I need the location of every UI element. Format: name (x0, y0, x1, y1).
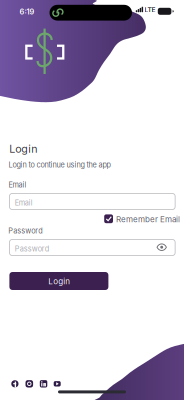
button[interactable]: YouTube (0, 0, 184, 400)
button[interactable]: Login (0, 0, 184, 400)
button[interactable]: Remember Email (0, 0, 184, 400)
staticText: Login (9, 142, 37, 155)
button[interactable]: Email (0, 0, 184, 400)
staticText: Login to continue using the app (8, 160, 110, 169)
staticText: Login (48, 276, 70, 286)
button[interactable]: Password (0, 0, 184, 400)
button[interactable]: Facebook (0, 0, 184, 400)
staticText: Password (15, 244, 49, 253)
staticText: Remember Email (116, 215, 180, 224)
staticText: Email (8, 180, 26, 189)
button[interactable]: LinkedIn (0, 0, 184, 400)
staticText: LTE (144, 6, 155, 14)
button[interactable]: Instagram (0, 0, 184, 400)
staticText: Email (15, 198, 33, 207)
staticText: Password (8, 226, 42, 235)
staticText: 6:19 (19, 7, 34, 16)
